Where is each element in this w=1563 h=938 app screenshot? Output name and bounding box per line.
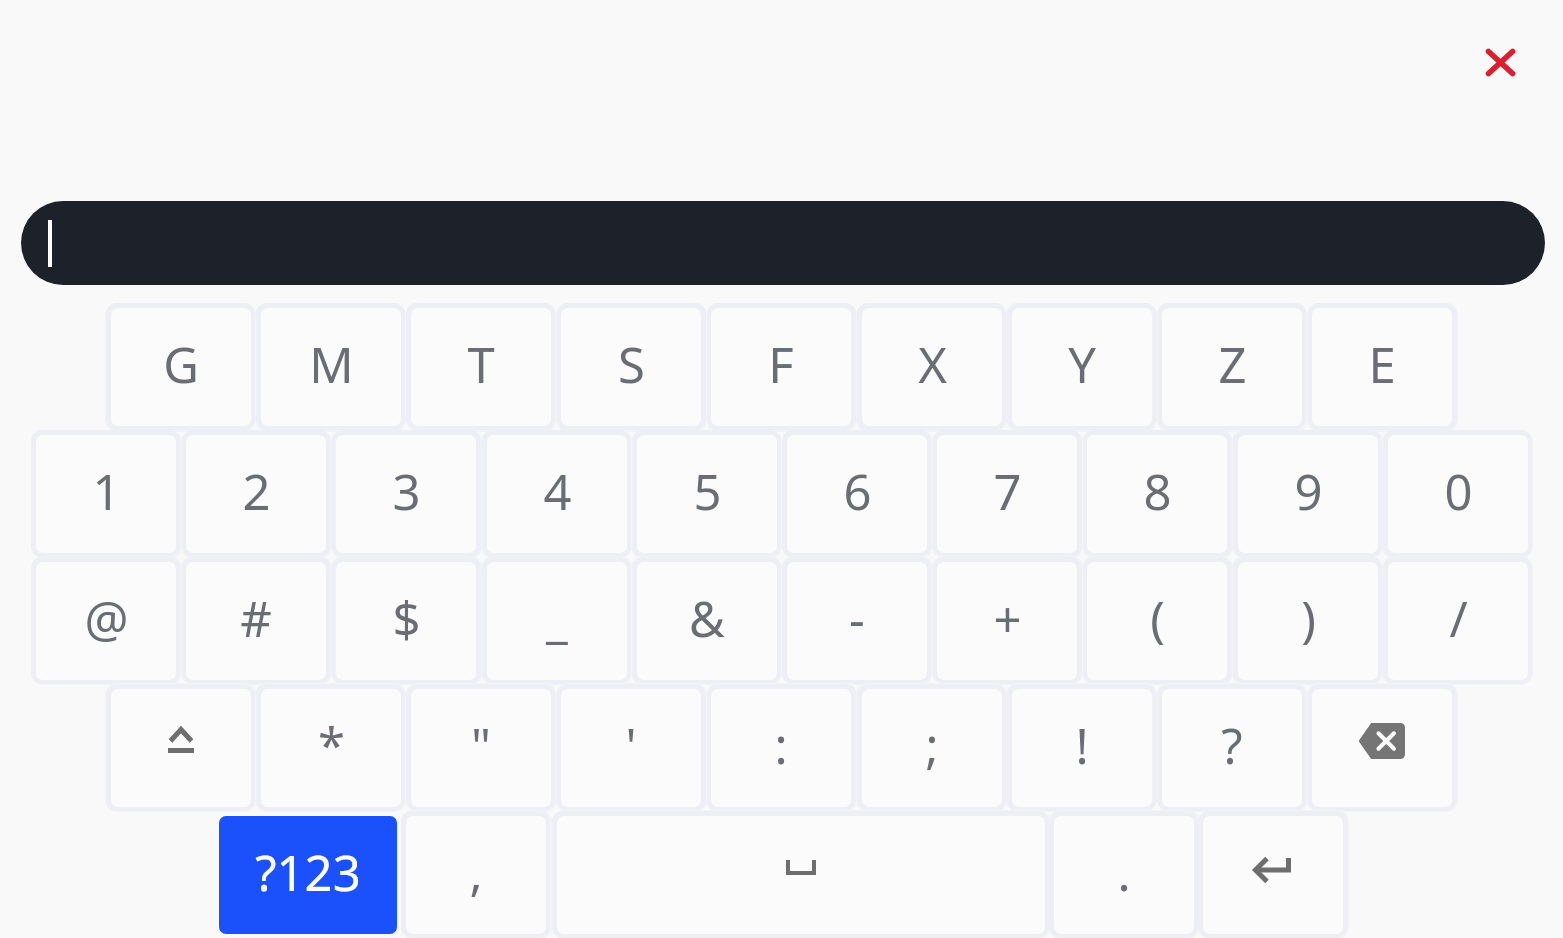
staticText: " bbox=[471, 712, 491, 779]
button[interactable]: X bbox=[862, 308, 1002, 426]
staticText: 9 bbox=[1294, 458, 1323, 525]
button[interactable]: $ bbox=[336, 562, 476, 680]
staticText: ( bbox=[1150, 585, 1165, 652]
staticText: _ bbox=[546, 585, 568, 652]
staticText: 2 bbox=[242, 458, 271, 525]
staticText: E bbox=[1368, 331, 1396, 398]
button[interactable]: ?123 bbox=[219, 816, 397, 934]
button[interactable]: ( bbox=[1087, 562, 1227, 680]
staticText: 8 bbox=[1143, 458, 1172, 525]
staticText: / bbox=[1449, 585, 1468, 652]
staticText: 4 bbox=[543, 458, 572, 525]
staticText: - bbox=[849, 585, 865, 652]
staticText: & bbox=[689, 585, 725, 652]
button[interactable]: 8 bbox=[1087, 435, 1227, 553]
button[interactable]: 1 bbox=[36, 435, 176, 553]
button[interactable]: 4 bbox=[487, 435, 627, 553]
button[interactable]: # bbox=[186, 562, 326, 680]
staticText: ! bbox=[1075, 712, 1089, 779]
button[interactable]: Space bbox=[557, 816, 1045, 934]
button[interactable] bbox=[21, 201, 1545, 285]
staticText: T bbox=[467, 331, 495, 398]
button[interactable]: 2 bbox=[186, 435, 326, 553]
staticText: ?123 bbox=[255, 839, 361, 906]
button[interactable]: : bbox=[711, 689, 851, 807]
button[interactable]: F bbox=[711, 308, 851, 426]
staticText: Y bbox=[1068, 331, 1096, 398]
button[interactable]: 9 bbox=[1238, 435, 1378, 553]
button[interactable]: - bbox=[787, 562, 927, 680]
button[interactable]: M bbox=[261, 308, 401, 426]
button[interactable]: ) bbox=[1238, 562, 1378, 680]
staticText: 0 bbox=[1444, 458, 1473, 525]
button[interactable]: + bbox=[937, 562, 1077, 680]
staticText: X bbox=[918, 331, 947, 398]
button[interactable]: Y bbox=[1012, 308, 1152, 426]
button[interactable]: Shift bbox=[111, 689, 251, 807]
staticText: $ bbox=[392, 585, 421, 652]
button[interactable]: T bbox=[411, 308, 551, 426]
button[interactable]: _ bbox=[487, 562, 627, 680]
button[interactable]: , bbox=[406, 816, 546, 934]
staticText: G bbox=[163, 331, 199, 398]
staticText: 6 bbox=[843, 458, 872, 525]
staticText: 5 bbox=[693, 458, 722, 525]
staticText: , bbox=[469, 839, 483, 906]
button[interactable]: ' bbox=[561, 689, 701, 807]
button[interactable]: ? bbox=[1162, 689, 1302, 807]
staticText: M bbox=[309, 331, 354, 398]
staticText: ? bbox=[1221, 712, 1243, 779]
button[interactable]: " bbox=[411, 689, 551, 807]
staticText: ' bbox=[625, 712, 637, 779]
button[interactable]: 3 bbox=[336, 435, 476, 553]
button[interactable]: Backspace bbox=[1312, 689, 1452, 807]
staticText: + bbox=[993, 585, 1022, 652]
staticText: * bbox=[318, 712, 345, 779]
staticText: . bbox=[1117, 839, 1131, 906]
button[interactable]: @ bbox=[36, 562, 176, 680]
button[interactable]: Enter bbox=[1203, 816, 1343, 934]
button[interactable]: & bbox=[637, 562, 777, 680]
staticText: ) bbox=[1301, 585, 1316, 652]
button[interactable]: ! bbox=[1012, 689, 1152, 807]
button[interactable]: G bbox=[111, 308, 251, 426]
staticText: S bbox=[618, 331, 645, 398]
button[interactable]: / bbox=[1388, 562, 1528, 680]
staticText: @ bbox=[84, 585, 129, 652]
staticText: 3 bbox=[392, 458, 421, 525]
button[interactable]: ; bbox=[862, 689, 1002, 807]
button[interactable]: E bbox=[1312, 308, 1452, 426]
button[interactable]: 6 bbox=[787, 435, 927, 553]
button[interactable]: 7 bbox=[937, 435, 1077, 553]
button[interactable]: Z bbox=[1162, 308, 1302, 426]
staticText: 1 bbox=[92, 458, 121, 525]
button[interactable]: . bbox=[1054, 816, 1194, 934]
button[interactable]: Close bbox=[1462, 24, 1538, 100]
button[interactable]: 5 bbox=[637, 435, 777, 553]
staticText: # bbox=[240, 585, 272, 652]
button[interactable]: S bbox=[561, 308, 701, 426]
staticText: : bbox=[774, 712, 788, 779]
button[interactable]: * bbox=[261, 689, 401, 807]
staticText: F bbox=[768, 331, 794, 398]
button[interactable]: 0 bbox=[1388, 435, 1528, 553]
staticText: 7 bbox=[993, 458, 1022, 525]
staticText: Z bbox=[1218, 331, 1247, 398]
staticText: ; bbox=[925, 712, 939, 779]
